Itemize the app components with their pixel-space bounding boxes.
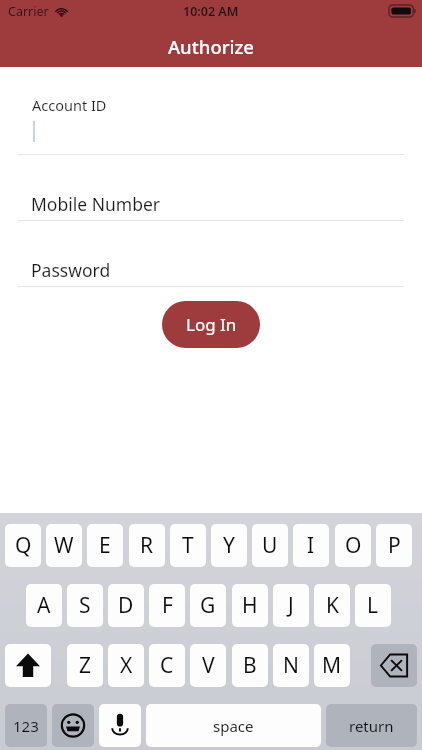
button[interactable]: G: [190, 584, 226, 627]
button[interactable]: U: [252, 524, 288, 567]
staticText: D: [118, 591, 134, 620]
staticText: N: [283, 651, 299, 680]
staticText: P: [388, 531, 401, 560]
button[interactable]: Emoji: [52, 704, 94, 747]
button[interactable]: S: [67, 584, 103, 627]
button[interactable]: R: [129, 524, 165, 567]
staticText: G: [200, 591, 216, 620]
button[interactable]: Dictation: [99, 704, 141, 747]
staticText: Password: [31, 258, 111, 282]
button[interactable]: E: [87, 524, 123, 567]
staticText: Authorize: [168, 34, 254, 59]
button[interactable]: Q: [5, 524, 41, 567]
button[interactable]: Shift: [5, 644, 51, 687]
staticText: W: [54, 531, 74, 560]
staticText: M: [322, 651, 342, 680]
button[interactable]: H: [232, 584, 268, 627]
button[interactable]: O: [335, 524, 371, 567]
staticText: Log In: [186, 313, 237, 336]
staticText: T: [182, 531, 194, 560]
button[interactable]: Mobile Number: [0, 188, 422, 220]
button[interactable]: A: [26, 584, 62, 627]
button[interactable]: F: [149, 584, 185, 627]
staticText: Account ID: [32, 95, 107, 115]
staticText: return: [349, 716, 394, 736]
button[interactable]: return: [326, 704, 417, 747]
staticText: H: [242, 591, 258, 620]
staticText: Carrier: [8, 3, 49, 20]
button[interactable]: K: [314, 584, 350, 627]
button[interactable]: V: [190, 644, 226, 687]
staticText: 10:02 AM: [183, 3, 239, 20]
button[interactable]: 123: [5, 704, 47, 747]
staticText: A: [37, 591, 51, 620]
staticText: R: [140, 531, 154, 560]
staticText: C: [160, 651, 174, 680]
button[interactable]: W: [46, 524, 82, 567]
staticText: O: [345, 531, 362, 560]
button[interactable]: T: [170, 524, 206, 567]
button[interactable]: Z: [67, 644, 103, 687]
button[interactable]: C: [149, 644, 185, 687]
button[interactable]: Password: [0, 254, 422, 286]
staticText: U: [262, 531, 278, 560]
button[interactable]: P: [376, 524, 412, 567]
staticText: 123: [13, 716, 39, 736]
button[interactable]: X: [108, 644, 144, 687]
button[interactable]: D: [108, 584, 144, 627]
button[interactable]: B: [232, 644, 268, 687]
staticText: Mobile Number: [31, 192, 161, 216]
staticText: J: [288, 591, 294, 620]
staticText: Q: [15, 531, 32, 560]
staticText: Y: [223, 531, 235, 560]
button[interactable]: space: [146, 704, 321, 747]
staticText: L: [367, 591, 379, 620]
staticText: S: [79, 591, 91, 620]
staticText: X: [120, 651, 133, 680]
staticText: V: [202, 651, 215, 680]
staticText: K: [326, 591, 339, 620]
staticText: I: [307, 531, 315, 560]
staticText: space: [213, 716, 254, 736]
button[interactable]: Delete: [371, 644, 417, 687]
button[interactable]: Y: [211, 524, 247, 567]
button[interactable]: N: [273, 644, 309, 687]
staticText: E: [99, 531, 111, 560]
button[interactable]: M: [314, 644, 350, 687]
button[interactable]: I: [293, 524, 329, 567]
button[interactable]: L: [355, 584, 391, 627]
button[interactable]: J: [273, 584, 309, 627]
button[interactable]: Log In: [162, 301, 260, 348]
staticText: F: [162, 591, 173, 620]
staticText: Z: [79, 651, 92, 680]
staticText: B: [243, 651, 257, 680]
button[interactable]: Account ID: [0, 94, 422, 154]
